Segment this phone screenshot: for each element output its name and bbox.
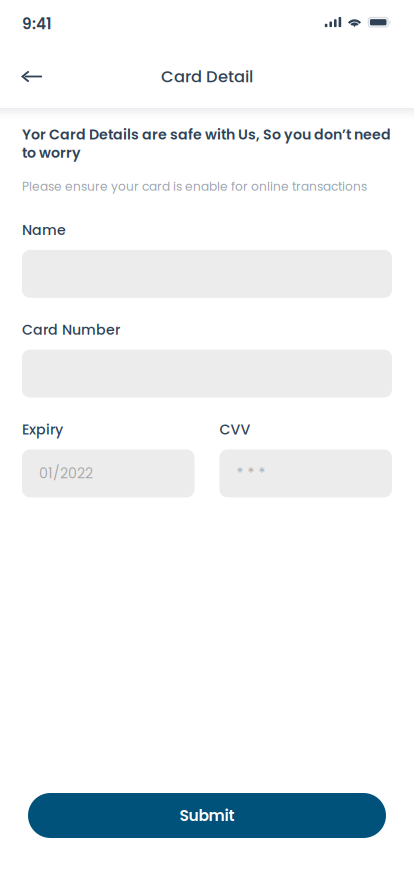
- staticText: Please ensure your card is enable for on…: [22, 178, 367, 195]
- staticText: * * *: [236, 463, 265, 483]
- staticText: Submit: [179, 805, 234, 826]
- staticText: 9:41: [22, 13, 52, 35]
- staticText: Yor Card Details are safe with Us, So yo…: [22, 125, 391, 163]
- staticText: CVV: [219, 420, 250, 439]
- staticText: 01/2022: [39, 463, 93, 483]
- button[interactable]: Submit: [28, 793, 386, 838]
- staticText: Name: [22, 220, 66, 240]
- button[interactable]: Back: [0, 55, 58, 98]
- staticText: Expiry: [22, 420, 63, 439]
- staticText: Card Detail: [161, 65, 253, 88]
- staticText: Card Number: [22, 320, 120, 340]
